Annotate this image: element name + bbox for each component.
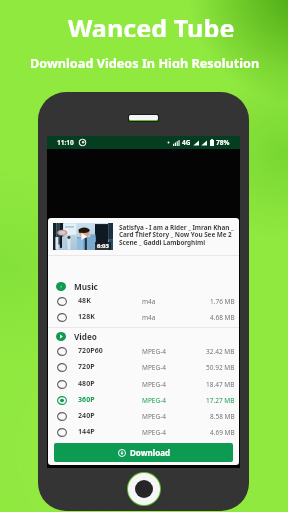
staticText: MPEG-4 xyxy=(142,412,166,421)
staticText: MPEG-4 xyxy=(142,347,166,356)
staticText: 18.47 MB xyxy=(206,380,235,389)
staticText: Wanced Tube xyxy=(68,11,235,37)
button[interactable]: 720P60 xyxy=(48,343,239,359)
staticText: 720P60 xyxy=(78,346,103,356)
button[interactable]: 480P xyxy=(48,376,239,392)
button[interactable]: 240P xyxy=(48,408,239,424)
staticText: 144P xyxy=(78,427,95,437)
staticText: Video xyxy=(74,331,97,342)
staticText: Download xyxy=(130,447,170,458)
button[interactable]: Download xyxy=(54,443,233,462)
staticText: 720P xyxy=(78,362,95,372)
staticText: 240P xyxy=(78,411,95,421)
staticText: Download Videos In High Resolution xyxy=(30,54,260,68)
staticText: Satisfya - I am a Rider _ Imran Khan _ C… xyxy=(119,223,238,247)
staticText: 11:10 xyxy=(57,138,74,147)
staticText: 1.76 MB xyxy=(210,297,235,306)
staticText: 17.27 MB xyxy=(206,396,235,405)
staticText: m4a xyxy=(142,297,156,306)
staticText: 32.42 MB xyxy=(206,347,235,356)
button[interactable]: 128K xyxy=(48,309,239,325)
staticText: 128K xyxy=(78,312,96,322)
staticText: 48K xyxy=(78,296,91,306)
staticText: Music xyxy=(74,281,98,292)
staticText: MPEG-4 xyxy=(142,363,166,372)
staticText: 78% xyxy=(216,138,230,147)
staticText: 4.69 MB xyxy=(210,428,235,437)
staticText: MPEG-4 xyxy=(142,380,166,389)
button[interactable]: 48K xyxy=(48,293,239,309)
staticText: 4.68 MB xyxy=(210,313,235,322)
staticText: 360P xyxy=(78,395,95,405)
staticText: MPEG-4 xyxy=(142,428,166,437)
button[interactable]: Video xyxy=(48,328,239,344)
staticText: m4a xyxy=(142,313,156,322)
staticText: 4G xyxy=(182,138,191,147)
button[interactable]: 360P xyxy=(48,392,239,408)
button[interactable]: 144P xyxy=(48,424,239,440)
staticText: 8.58 MB xyxy=(210,412,235,421)
button[interactable]: Music xyxy=(48,278,239,294)
staticText: 480P xyxy=(78,379,95,389)
staticText: MPEG-4 xyxy=(142,396,166,405)
staticText: 50.92 MB xyxy=(206,363,235,372)
button[interactable]: 720P xyxy=(48,359,239,375)
staticText: 6:03 xyxy=(97,242,109,250)
